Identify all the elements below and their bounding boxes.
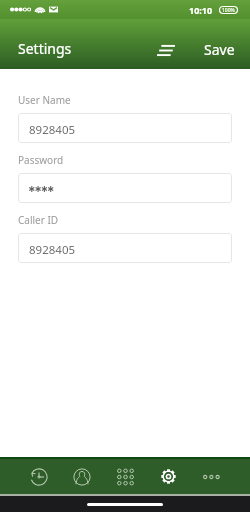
staticText: 8928405 xyxy=(29,122,76,138)
button[interactable]: 8928405 xyxy=(18,113,232,143)
staticText: Settings xyxy=(18,39,72,58)
button[interactable] xyxy=(18,173,232,203)
staticText: User Name xyxy=(18,93,71,107)
button[interactable]: Save xyxy=(204,40,235,59)
button[interactable]: Dialpad xyxy=(104,459,146,494)
button[interactable]: Recents xyxy=(18,459,60,494)
staticText: 8928405 xyxy=(29,242,76,258)
button[interactable]: Contacts xyxy=(61,459,103,494)
button[interactable]: Sort xyxy=(153,40,179,60)
staticText: 10:10 xyxy=(189,4,213,16)
button[interactable]: 8928405 xyxy=(18,233,232,263)
staticText: 100% xyxy=(222,7,235,14)
staticText: Password xyxy=(18,153,64,167)
staticText: Caller ID xyxy=(18,213,59,227)
button[interactable]: More xyxy=(191,459,233,494)
button[interactable]: Settings xyxy=(147,459,189,494)
staticText: Save xyxy=(204,40,235,59)
